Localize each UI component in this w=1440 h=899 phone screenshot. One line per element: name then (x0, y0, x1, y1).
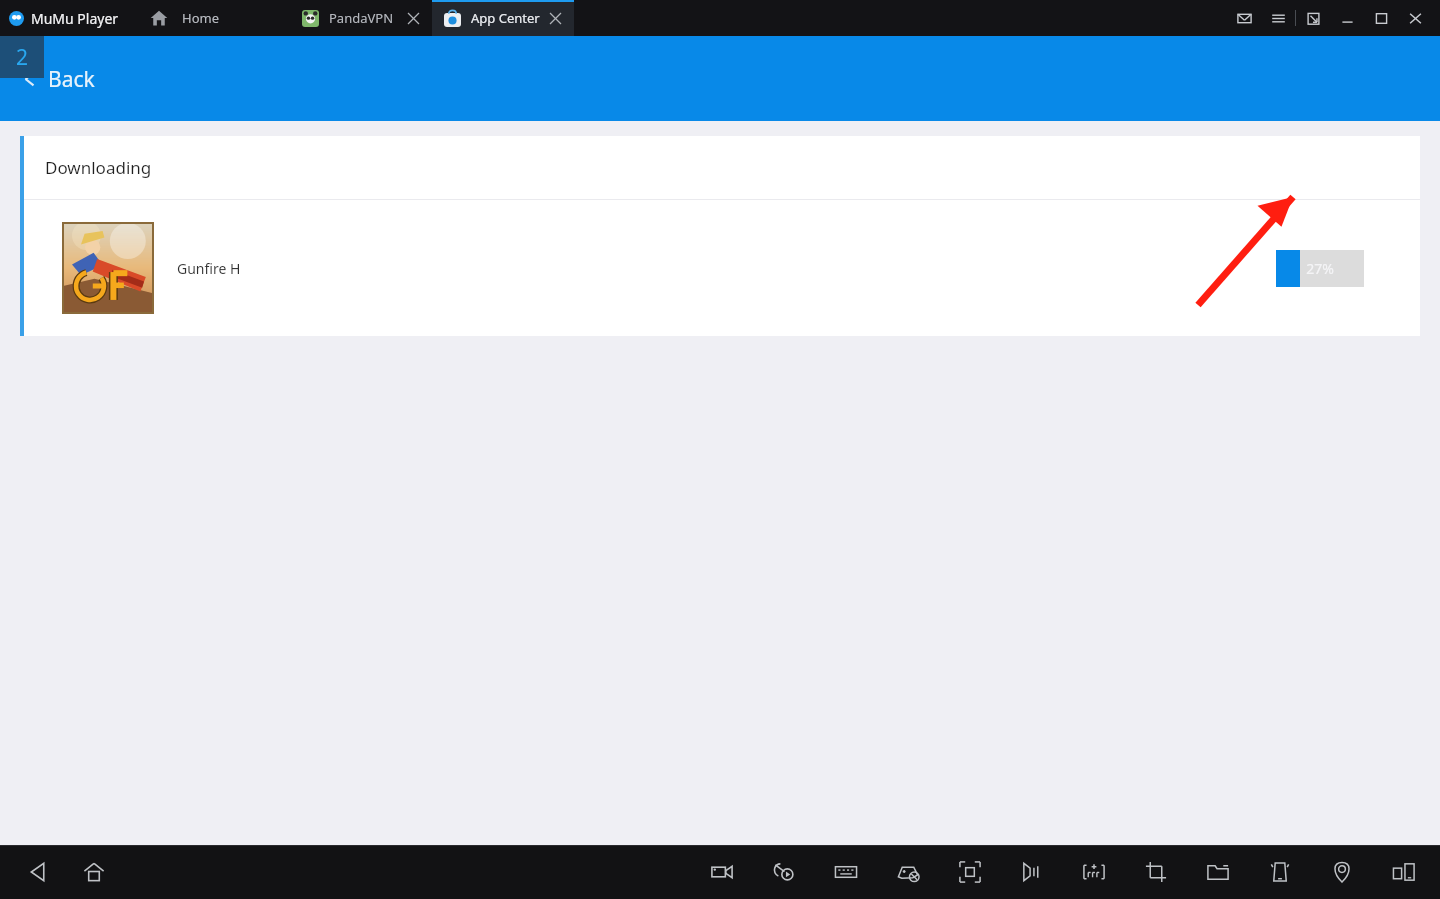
button[interactable]: Gunfire H (24, 200, 1420, 336)
button[interactable]: Menu (1261, 0, 1295, 36)
button[interactable]: Macro (764, 850, 804, 894)
button[interactable]: Multi instance (1384, 850, 1424, 894)
staticText: Downloading (45, 156, 152, 179)
button[interactable]: Install APK (1074, 850, 1114, 894)
button[interactable]: Minimize (1330, 0, 1364, 36)
staticText: PandaVPN (329, 9, 394, 27)
button[interactable]: Location (1322, 850, 1362, 894)
button[interactable]: Close App Center (542, 5, 568, 31)
staticText: App Center (471, 9, 540, 27)
button[interactable]: Messages (1227, 0, 1261, 36)
button[interactable]: MuMu Player (0, 0, 140, 36)
button[interactable]: Maximize (1364, 0, 1398, 36)
button[interactable]: Back (18, 850, 58, 894)
staticText: Back (48, 65, 95, 94)
button[interactable]: Full screen (950, 850, 990, 894)
button[interactable]: App Center (432, 0, 574, 36)
button[interactable]: Volume (1012, 850, 1052, 894)
button[interactable]: Gamepad (888, 850, 928, 894)
staticText: Home (182, 9, 219, 27)
button[interactable]: Back (22, 57, 132, 101)
button[interactable]: Shared folder (1198, 850, 1238, 894)
button[interactable]: 27% (1276, 250, 1364, 287)
button[interactable]: Record screen (702, 850, 742, 894)
button[interactable]: Restore down (1296, 0, 1330, 36)
button[interactable]: Shake (1260, 850, 1300, 894)
staticText: 27% (1306, 259, 1334, 278)
staticText: 2 (16, 43, 29, 72)
button[interactable]: Home (74, 850, 114, 894)
button[interactable]: Keyboard (826, 850, 866, 894)
button[interactable]: Screenshot (1136, 850, 1176, 894)
button[interactable]: Close (1398, 0, 1432, 36)
staticText: Gunfire H (177, 259, 241, 278)
staticText: MuMu Player (31, 9, 119, 28)
button[interactable]: Close PandaVPN (400, 5, 426, 31)
button[interactable]: Home (140, 0, 290, 36)
button[interactable]: PandaVPN (290, 0, 432, 36)
